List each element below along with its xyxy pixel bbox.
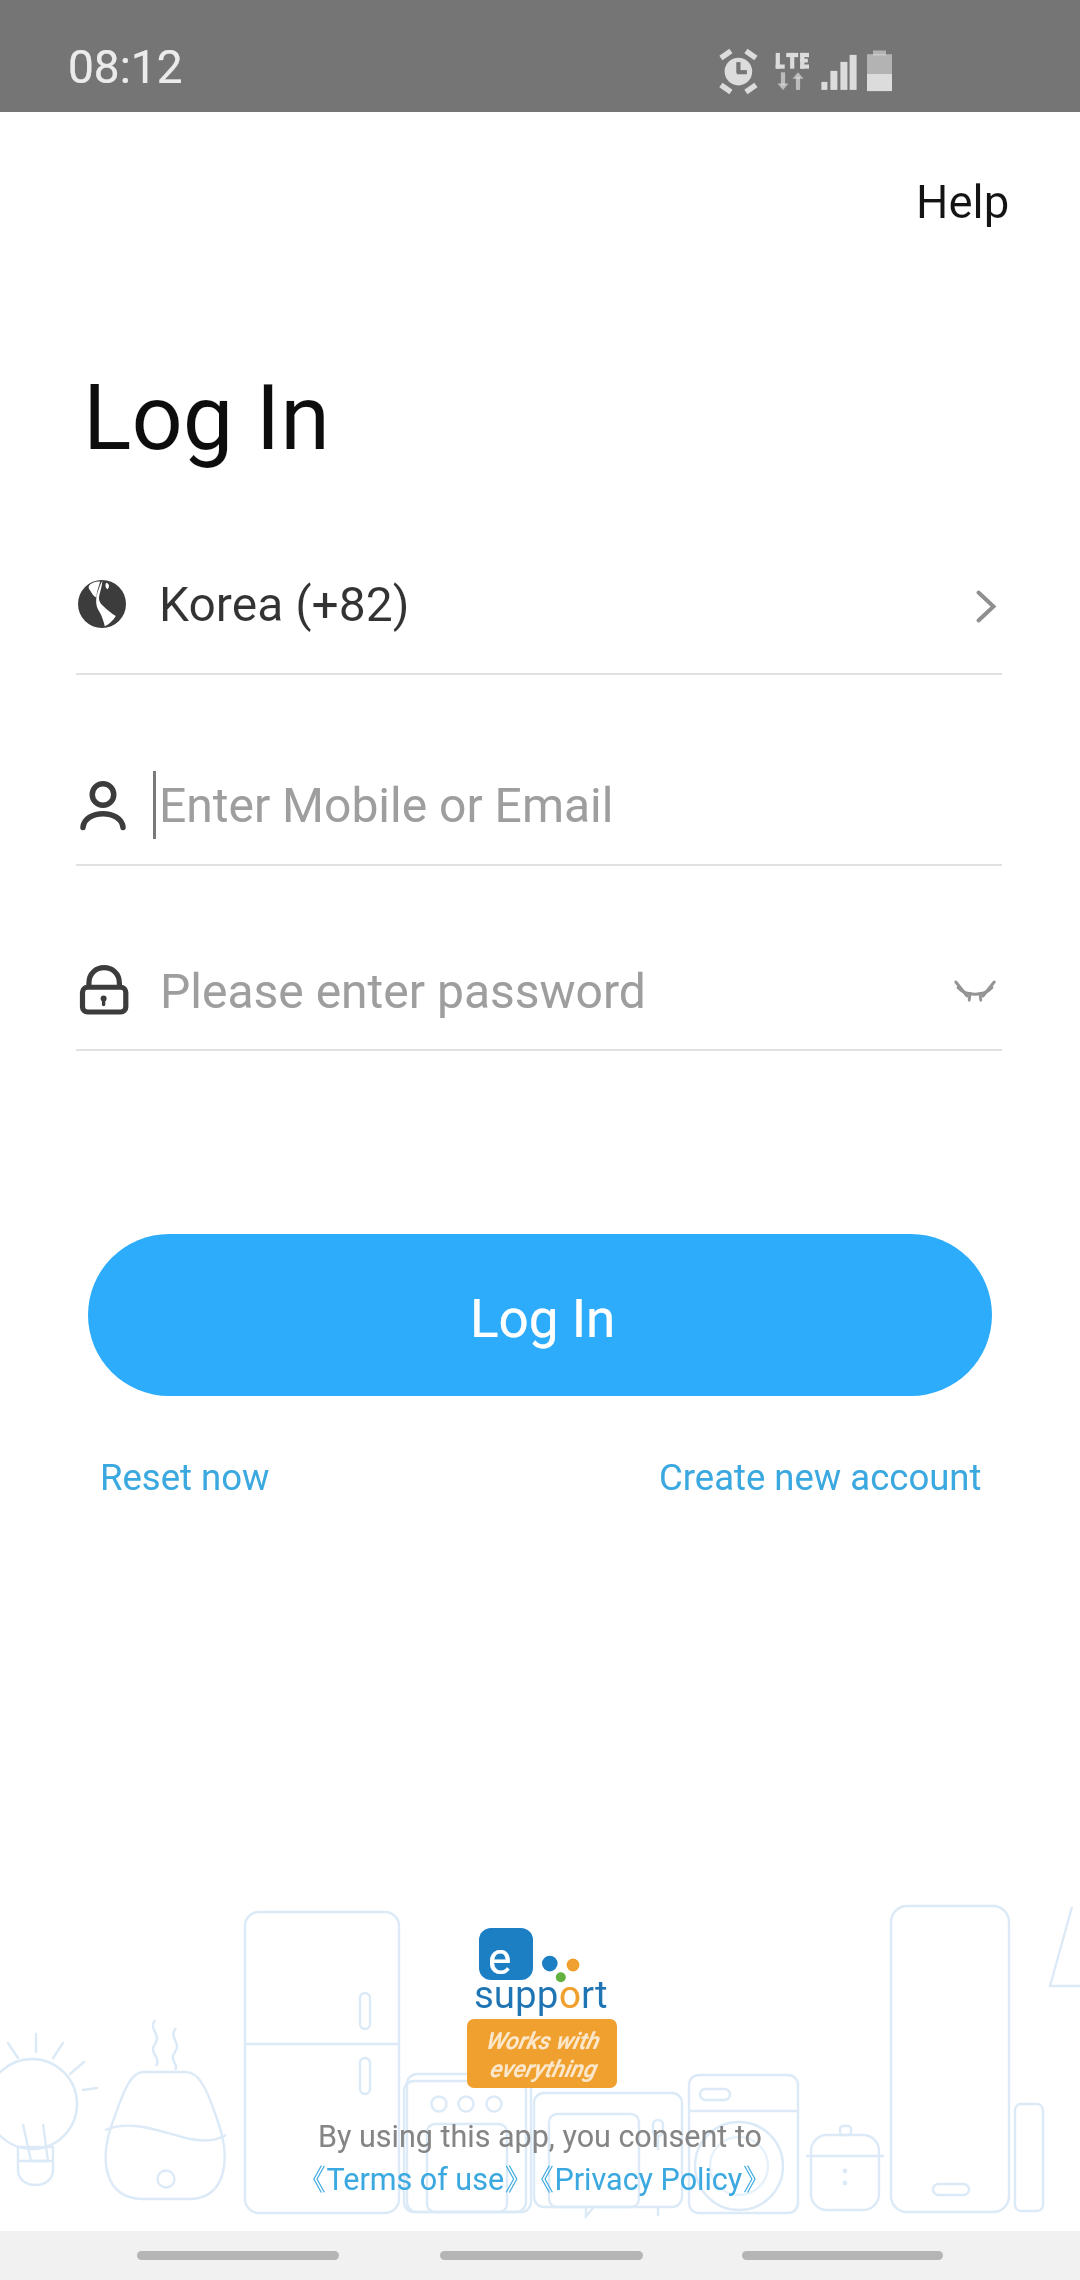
staticText: Create new account bbox=[659, 1456, 982, 1499]
staticText: 08:12 bbox=[68, 40, 183, 94]
button[interactable]: Show password bbox=[944, 960, 1006, 1022]
staticText: rt bbox=[581, 1972, 608, 2017]
button[interactable]: Help bbox=[896, 160, 1030, 245]
button[interactable]: 《Terms of use》 bbox=[296, 2161, 535, 2199]
staticText: 《Privacy Policy》 bbox=[524, 2161, 773, 2199]
staticText: everything bbox=[489, 2055, 596, 2083]
button[interactable]: Recents bbox=[137, 2251, 339, 2260]
staticText: 《Terms of use》 bbox=[296, 2161, 535, 2199]
button[interactable]: Create new account bbox=[639, 1442, 1002, 1513]
staticText: Log In bbox=[83, 366, 330, 471]
button[interactable]: Reset now bbox=[80, 1442, 290, 1513]
staticText: e bbox=[488, 1933, 512, 1985]
staticText: Korea (+82) bbox=[159, 576, 410, 632]
staticText: By using this app, you consent to bbox=[0, 2119, 1080, 2155]
staticText: o bbox=[559, 1972, 581, 2017]
staticText: Works with bbox=[485, 2027, 599, 2055]
button[interactable]: Log In bbox=[88, 1234, 992, 1396]
staticText: Enter Mobile or Email bbox=[159, 777, 614, 833]
staticText: Log In bbox=[470, 1288, 616, 1350]
staticText: supp bbox=[474, 1972, 559, 2017]
button[interactable]: Home bbox=[440, 2251, 643, 2260]
button[interactable]: Korea (+82) bbox=[78, 546, 1004, 662]
button[interactable]: Back bbox=[742, 2251, 943, 2260]
staticText: Help bbox=[916, 176, 1010, 229]
staticText: Reset now bbox=[100, 1456, 270, 1499]
button[interactable]: 《Privacy Policy》 bbox=[524, 2161, 773, 2199]
button[interactable]: Enter Mobile or Email bbox=[78, 747, 1002, 863]
staticText: Please enter password bbox=[160, 963, 646, 1019]
